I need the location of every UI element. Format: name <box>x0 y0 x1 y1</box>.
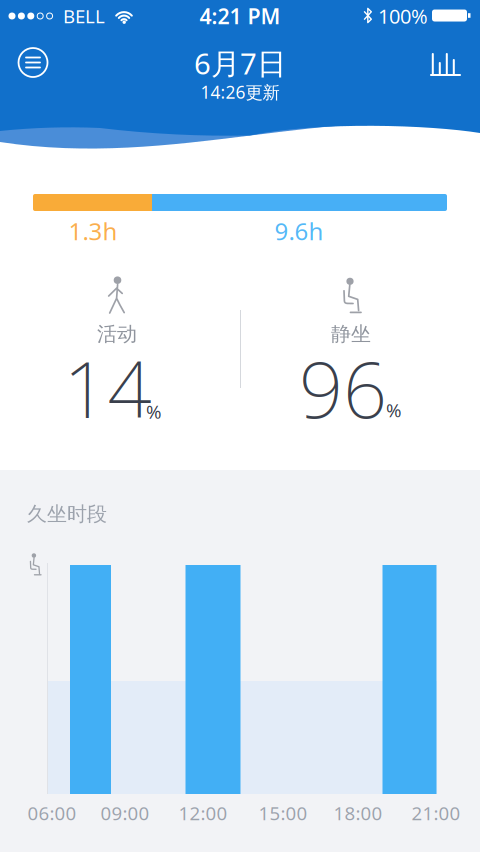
staticText: 15:00 <box>258 801 307 825</box>
staticText: 18:00 <box>333 801 382 825</box>
staticText: 06:00 <box>27 801 76 825</box>
staticText: 12:00 <box>178 801 227 825</box>
staticText: 久坐时段 <box>27 502 107 526</box>
button[interactable]: Statistics <box>423 41 467 85</box>
staticText: 活动 <box>97 322 137 346</box>
staticText: 静坐 <box>331 322 371 346</box>
staticText: 9.6h <box>274 215 323 247</box>
staticText: 1.3h <box>68 215 117 247</box>
staticText: 14 <box>63 335 151 441</box>
staticText: 6月7日 <box>194 43 286 82</box>
button[interactable]: Menu <box>11 40 55 84</box>
staticText: 09:00 <box>100 801 149 825</box>
staticText: 96 <box>299 335 387 441</box>
staticText: 4:21 PM <box>199 1 280 31</box>
staticText: % <box>386 398 402 422</box>
staticText: 100% <box>378 3 428 29</box>
staticText: 21:00 <box>411 801 460 825</box>
staticText: BELL <box>63 4 105 28</box>
staticText: % <box>146 399 162 424</box>
staticText: 14:26更新 <box>200 80 279 103</box>
